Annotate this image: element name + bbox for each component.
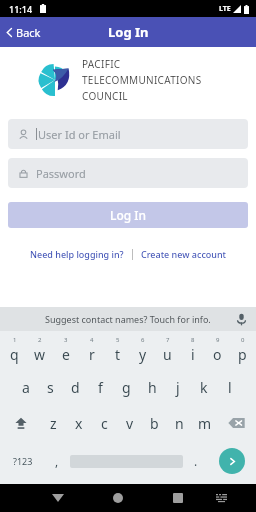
button[interactable]: 8 xyxy=(180,331,205,369)
button[interactable]: b xyxy=(142,405,167,441)
button[interactable]: z xyxy=(40,405,66,441)
staticText: s xyxy=(47,378,54,397)
staticText: 3 xyxy=(64,336,68,344)
button[interactable]: s xyxy=(38,369,63,405)
staticText: 9 xyxy=(216,336,220,344)
staticText: b xyxy=(150,414,159,433)
staticText: q xyxy=(10,345,19,364)
button[interactable]: x xyxy=(66,405,92,441)
button[interactable]: Shift xyxy=(1,405,40,441)
staticText: 2 xyxy=(38,336,42,344)
button[interactable]: Back xyxy=(0,21,49,44)
staticText: 6 xyxy=(141,336,145,344)
button[interactable]: 6 xyxy=(130,331,155,369)
staticText: o xyxy=(213,345,222,364)
staticText: r xyxy=(89,345,95,364)
staticText: c xyxy=(101,414,108,433)
staticText: User Id or Email xyxy=(38,127,121,142)
staticText: 0 xyxy=(241,336,245,344)
staticText: 8 xyxy=(191,336,195,344)
staticText: k xyxy=(200,378,208,397)
staticText: 5 xyxy=(116,336,120,344)
button[interactable]: j xyxy=(165,369,191,405)
button[interactable]: c xyxy=(92,405,117,441)
staticText: l xyxy=(228,378,232,397)
button[interactable]: ?123 xyxy=(2,441,44,481)
staticText: t xyxy=(115,345,121,364)
staticText: p xyxy=(238,345,247,364)
staticText: j xyxy=(176,378,180,397)
button[interactable]: User Id or Email xyxy=(8,119,248,149)
button[interactable]: Suggest contact names? Touch for info. xyxy=(0,307,256,331)
staticText: Back xyxy=(16,25,41,40)
staticText: u xyxy=(163,345,172,364)
staticText: COUNCIL xyxy=(82,89,128,103)
button[interactable]: g xyxy=(113,369,139,405)
button[interactable]: 5 xyxy=(105,331,130,369)
staticText: f xyxy=(98,378,103,397)
staticText: w xyxy=(34,345,46,364)
button[interactable]: 2 xyxy=(27,331,53,369)
button[interactable]: Enter xyxy=(219,448,245,474)
button[interactable]: . xyxy=(183,441,209,481)
staticText: g xyxy=(122,378,131,397)
staticText: m xyxy=(198,414,212,433)
button[interactable]: d xyxy=(63,369,88,405)
staticText: i xyxy=(191,345,195,364)
button[interactable]: n xyxy=(167,405,192,441)
staticText: ?123 xyxy=(13,455,33,467)
staticText: Need help logging in? xyxy=(30,248,124,260)
staticText: PACIFIC xyxy=(82,57,121,71)
staticText: v xyxy=(126,414,134,433)
button[interactable]: a xyxy=(13,369,38,405)
button[interactable]: Home xyxy=(105,485,131,511)
staticText: , xyxy=(55,453,59,469)
staticText: 11:14 xyxy=(9,3,33,15)
staticText: y xyxy=(139,345,147,364)
staticText: h xyxy=(148,378,157,397)
button[interactable]: f xyxy=(88,369,113,405)
staticText: Password xyxy=(36,166,86,181)
staticText: a xyxy=(22,378,30,397)
button[interactable]: Need help logging in? xyxy=(28,245,126,263)
staticText: 4 xyxy=(90,336,94,344)
staticText: 7 xyxy=(166,336,170,344)
button[interactable]: Voice input xyxy=(236,313,247,326)
staticText: e xyxy=(62,345,70,364)
staticText: Suggest contact names? Touch for info. xyxy=(45,313,211,325)
button[interactable]: k xyxy=(191,369,217,405)
button[interactable]: v xyxy=(117,405,142,441)
button[interactable]: Create new account xyxy=(139,245,229,263)
staticText: Log In xyxy=(110,207,147,223)
button[interactable]: m xyxy=(192,405,217,441)
button[interactable]: h xyxy=(139,369,165,405)
staticText: d xyxy=(71,378,80,397)
button[interactable]: Back xyxy=(45,485,71,511)
button[interactable]: 7 xyxy=(155,331,180,369)
button[interactable]: 0 xyxy=(230,331,255,369)
staticText: 1 xyxy=(13,336,17,344)
button[interactable]: 3 xyxy=(53,331,79,369)
button[interactable]: Log In xyxy=(8,202,248,228)
button[interactable]: Backspace xyxy=(217,405,255,441)
button[interactable]: Password xyxy=(8,158,248,188)
button[interactable]: 9 xyxy=(205,331,230,369)
staticText: LTE xyxy=(219,4,231,14)
button[interactable]: , xyxy=(44,441,70,481)
button[interactable]: 4 xyxy=(79,331,105,369)
staticText: Create new account xyxy=(141,248,227,260)
staticText: . xyxy=(194,453,198,469)
staticText: z xyxy=(50,414,57,433)
staticText: TELECOMMUNICATIONS xyxy=(82,73,202,87)
staticText: Log In xyxy=(108,23,149,41)
staticText: n xyxy=(175,414,184,433)
button[interactable]: l xyxy=(217,369,243,405)
button[interactable]: Recents xyxy=(165,485,191,511)
button[interactable]: Change keyboard xyxy=(210,487,232,509)
staticText: x xyxy=(75,414,83,433)
button[interactable]: 1 xyxy=(1,331,27,369)
